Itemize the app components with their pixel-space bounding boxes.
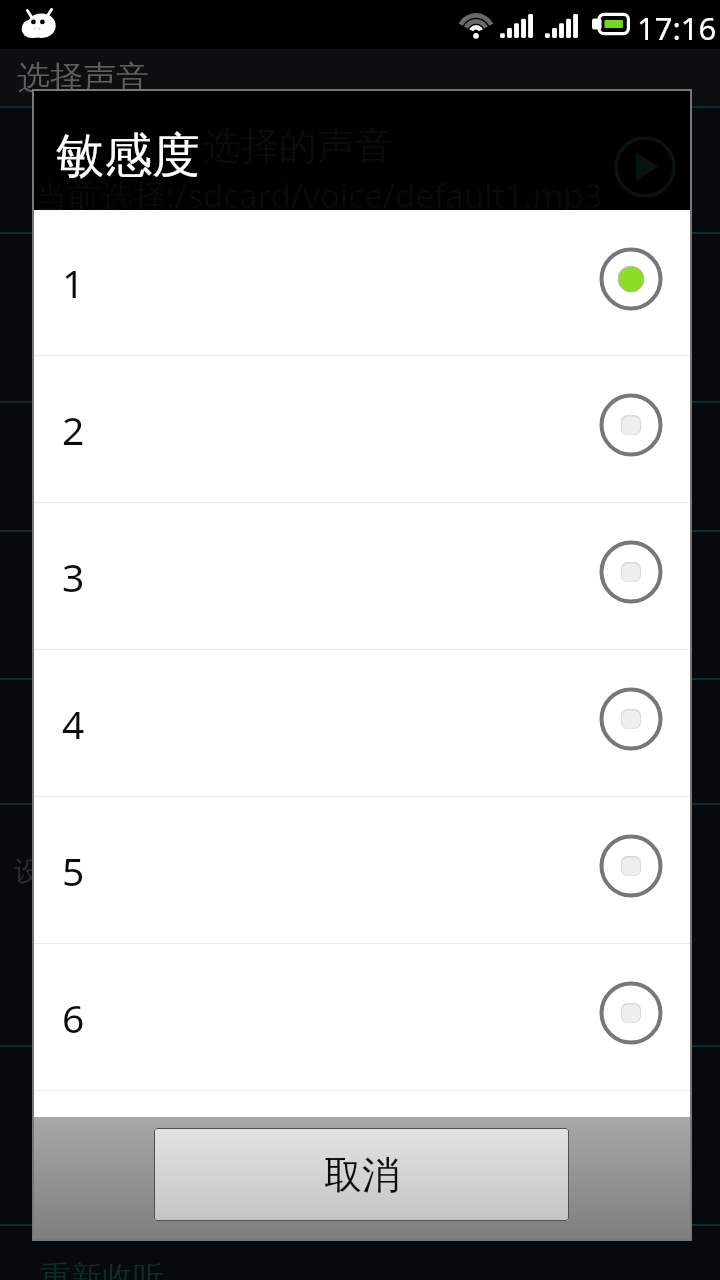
staticText: 6	[62, 991, 85, 1044]
staticText: 选择声音	[17, 57, 149, 99]
staticText: 设	[14, 854, 42, 889]
button[interactable]: 2	[32, 356, 692, 502]
staticText: 5	[62, 844, 85, 897]
button[interactable]: 取消	[154, 1128, 569, 1221]
staticText: 当前选择:/sdcard/voice/default1.mp3	[34, 173, 603, 218]
button[interactable]: 4	[32, 650, 692, 796]
button[interactable]: 5	[32, 797, 692, 943]
button[interactable]: 1	[32, 210, 692, 355]
staticText: 4	[62, 697, 85, 750]
staticText: 3	[62, 550, 85, 603]
staticText: 2	[62, 403, 85, 456]
button[interactable]: 3	[32, 503, 692, 649]
staticText: 取消	[324, 1151, 400, 1199]
staticText: 重新收听	[40, 1258, 164, 1280]
button[interactable]: 6	[32, 944, 692, 1090]
staticText: 选择的声音	[203, 122, 393, 170]
staticText: 17:16	[637, 7, 717, 49]
staticText: 1	[62, 256, 85, 309]
staticText: 敏感度	[56, 126, 200, 186]
